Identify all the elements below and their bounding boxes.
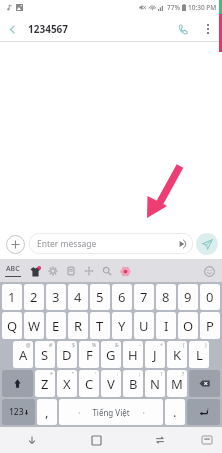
- button[interactable]: Keyboard option: [62, 262, 80, 280]
- button[interactable]: Home: [64, 427, 128, 453]
- staticText: ABC: [6, 264, 20, 274]
- button[interactable]: Key: [189, 370, 220, 397]
- staticText: .: [173, 403, 177, 421]
- staticText: %: [92, 342, 97, 349]
- button[interactable]: Recents: [128, 427, 192, 453]
- staticText: I: [164, 317, 169, 335]
- staticText: 6: [118, 288, 126, 306]
- staticText: #: [49, 342, 53, 349]
- button[interactable]: R: [68, 312, 88, 339]
- staticText: W: [28, 317, 41, 335]
- staticText: ?: [182, 371, 185, 378]
- button[interactable]: I: [156, 312, 176, 339]
- staticText: 10:30 PM: [188, 3, 217, 12]
- button[interactable]: X: [57, 370, 77, 397]
- staticText: $: [72, 342, 75, 349]
- button[interactable]: B: [123, 370, 143, 397]
- staticText: 1: [8, 288, 16, 306]
- button[interactable]: 123: [2, 399, 35, 425]
- button[interactable]: Y: [112, 312, 132, 339]
- staticText: R: [74, 317, 83, 335]
- button[interactable]: Back: [0, 17, 24, 41]
- button[interactable]: K: [167, 341, 187, 368]
- button[interactable]: Enter message: [29, 233, 193, 254]
- button[interactable]: D: [57, 341, 77, 368]
- staticText: ': [95, 371, 97, 378]
- staticText: 2: [30, 288, 38, 306]
- button[interactable]: A: [13, 341, 33, 368]
- button[interactable]: Tiếng Việt: [59, 399, 163, 425]
- staticText: N: [150, 375, 160, 393]
- staticText: ,: [45, 403, 49, 421]
- button[interactable]: Voice message: [174, 237, 188, 251]
- button[interactable]: S: [35, 341, 55, 368]
- button[interactable]: More options: [196, 17, 220, 41]
- button[interactable]: P: [200, 312, 220, 339]
- button[interactable]: 2: [24, 284, 44, 310]
- button[interactable]: O: [178, 312, 198, 339]
- button[interactable]: Hide keyboard: [0, 427, 64, 453]
- button[interactable]: 1: [2, 284, 22, 310]
- staticText: ;: [139, 371, 141, 378]
- button[interactable]: Keyboard switch: [192, 427, 222, 453]
- button[interactable]: Stickers: [26, 262, 44, 280]
- button[interactable]: Send: [196, 233, 218, 255]
- staticText: M: [171, 375, 183, 393]
- button[interactable]: C: [79, 370, 99, 397]
- button[interactable]: M: [167, 370, 187, 397]
- button[interactable]: N: [145, 370, 165, 397]
- button[interactable]: Q: [2, 312, 22, 339]
- button[interactable]: Emoji: [200, 262, 218, 280]
- button[interactable]: V: [101, 370, 121, 397]
- button[interactable]: Emoji flower: [116, 262, 134, 280]
- button[interactable]: 7: [134, 284, 154, 310]
- button[interactable]: Keyboard option: [80, 262, 98, 280]
- staticText: T: [96, 317, 104, 335]
- button[interactable]: ABC: [3, 264, 23, 277]
- button[interactable]: G: [101, 341, 121, 368]
- staticText: !: [161, 371, 163, 378]
- button[interactable]: H: [123, 341, 143, 368]
- button[interactable]: Z: [35, 370, 55, 397]
- button[interactable]: J: [145, 341, 165, 368]
- button[interactable]: L: [189, 341, 209, 368]
- staticText: &: [115, 342, 119, 349]
- staticText: Y: [118, 317, 126, 335]
- staticText: S: [41, 346, 49, 364]
- staticText: 8: [162, 288, 170, 306]
- button[interactable]: Keyboard option: [44, 262, 62, 280]
- button[interactable]: Enter: [187, 399, 220, 425]
- button[interactable]: 6: [112, 284, 132, 310]
- button[interactable]: U: [134, 312, 154, 339]
- staticText: 1234567: [28, 22, 69, 36]
- button[interactable]: 9: [178, 284, 198, 310]
- button[interactable]: Key: [2, 370, 33, 397]
- staticText: (: [183, 342, 185, 349]
- button[interactable]: ,: [37, 399, 57, 425]
- staticText: :: [117, 371, 119, 378]
- button[interactable]: 5: [90, 284, 110, 310]
- button[interactable]: Add attachment: [4, 233, 26, 255]
- staticText: P: [206, 317, 214, 335]
- staticText: X: [63, 375, 71, 393]
- button[interactable]: 0: [200, 284, 220, 310]
- button[interactable]: Call: [170, 16, 196, 42]
- staticText: +: [160, 342, 163, 349]
- button[interactable]: 4: [68, 284, 88, 310]
- staticText: A: [19, 346, 28, 364]
- button[interactable]: F: [79, 341, 99, 368]
- staticText: 5: [96, 288, 104, 306]
- button[interactable]: 3: [46, 284, 66, 310]
- button[interactable]: .: [165, 399, 185, 425]
- staticText: C: [85, 375, 94, 393]
- staticText: @: [26, 342, 31, 349]
- button[interactable]: Keyboard option: [98, 262, 116, 280]
- button[interactable]: T: [90, 312, 110, 339]
- staticText: F: [86, 346, 93, 364]
- button[interactable]: 8: [156, 284, 176, 310]
- staticText: L: [196, 346, 203, 364]
- button[interactable]: W: [24, 312, 44, 339]
- staticText: E: [52, 317, 60, 335]
- staticText: 7: [140, 288, 148, 306]
- button[interactable]: E: [46, 312, 66, 339]
